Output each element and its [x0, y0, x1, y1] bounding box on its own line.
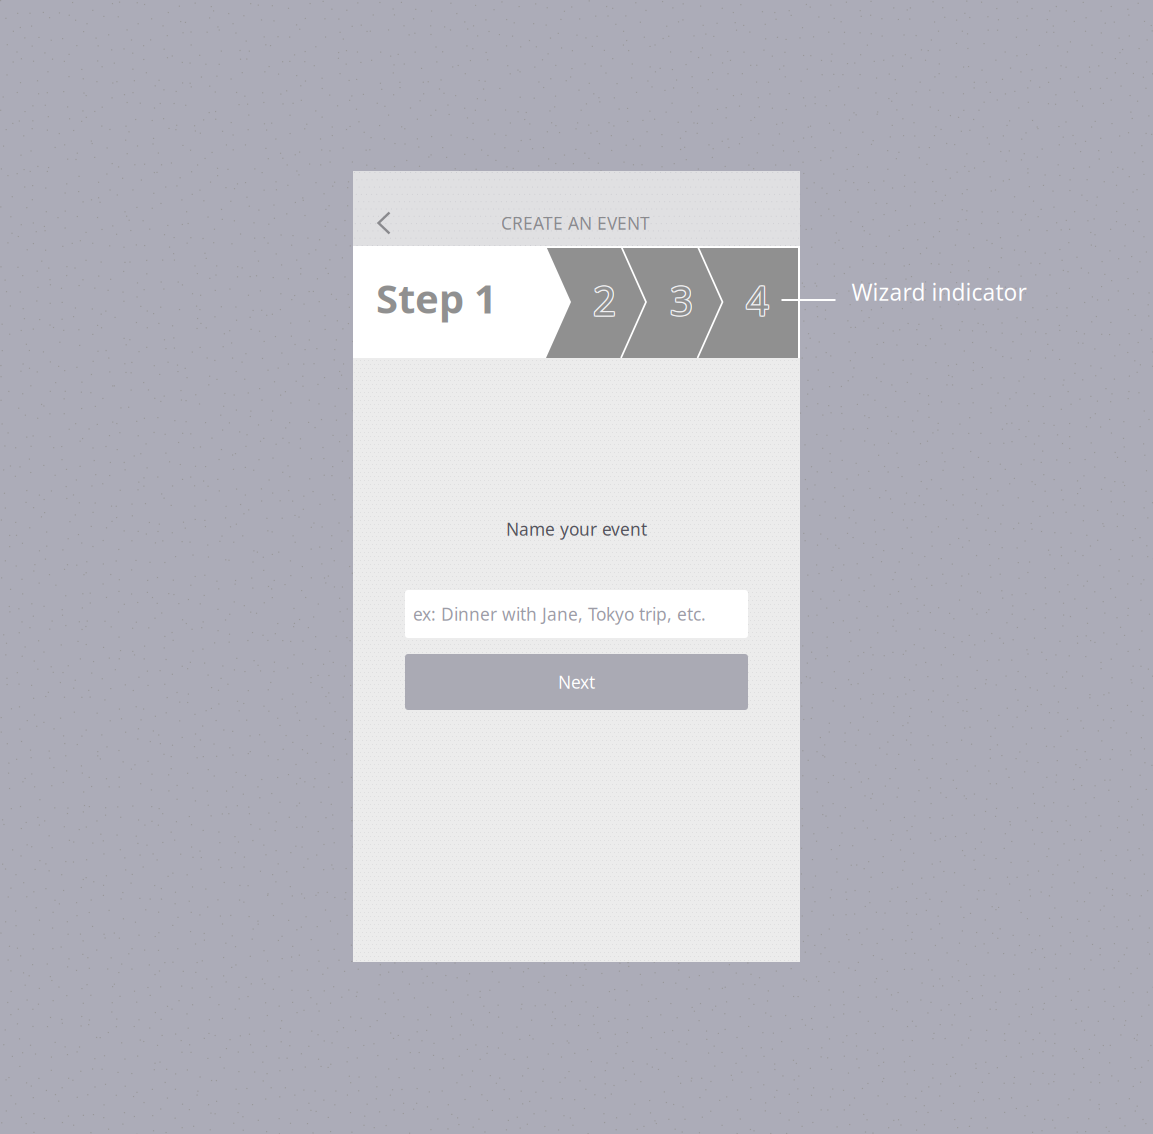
staticText: 3 — [670, 272, 693, 325]
staticText: 2 — [593, 274, 616, 327]
staticText: Wizard indicator — [851, 277, 1026, 307]
staticText: 3 — [671, 272, 694, 325]
staticText: 2 — [594, 273, 617, 326]
staticText: 4 — [746, 273, 769, 326]
staticText: 3 — [670, 274, 693, 327]
button[interactable]: Step 2 — [566, 244, 642, 356]
staticText: ex: Dinner with Jane, Tokyo trip, etc. — [413, 602, 706, 625]
button[interactable]: Step 4 — [719, 244, 795, 356]
staticText: 4 — [745, 272, 768, 325]
staticText: 4 — [745, 273, 768, 326]
staticText: 3 — [669, 274, 692, 327]
staticText: 2 — [592, 272, 615, 325]
staticText: 2 — [592, 273, 615, 326]
button[interactable]: Step 1 — [353, 246, 571, 358]
staticText: 2 — [592, 274, 615, 327]
staticText: 3 — [671, 274, 694, 327]
staticText: 4 — [747, 274, 770, 327]
staticText: 4 — [745, 274, 768, 327]
staticText: Step 1 — [376, 271, 497, 324]
staticText: Next — [558, 670, 595, 693]
staticText: 4 — [747, 272, 770, 325]
staticText: 4 — [746, 274, 769, 327]
staticText: 2 — [594, 274, 617, 327]
staticText: 4 — [747, 273, 770, 326]
staticText: 3 — [669, 272, 692, 325]
button[interactable]: Event name — [405, 590, 748, 638]
button[interactable]: Next — [405, 654, 748, 710]
staticText: 2 — [593, 273, 616, 326]
staticText: 3 — [670, 273, 693, 326]
staticText: CREATE AN EVENT — [501, 211, 650, 234]
staticText: 2 — [593, 272, 616, 325]
staticText: Name your event — [506, 517, 647, 540]
staticText: 3 — [671, 273, 694, 326]
button[interactable]: Step 3 — [643, 244, 719, 356]
staticText: 2 — [594, 272, 617, 325]
staticText: 4 — [746, 272, 769, 325]
staticText: 3 — [669, 273, 692, 326]
button[interactable]: Back — [362, 201, 406, 245]
